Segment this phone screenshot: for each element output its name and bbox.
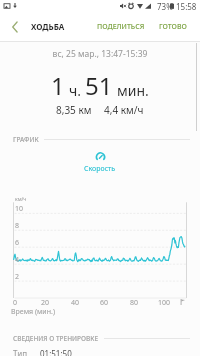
staticText: 100: [152, 298, 176, 308]
staticText: 01:51:50: [40, 348, 72, 356]
staticText: 4,4 км/ч: [104, 103, 144, 117]
staticText: ХОДЬБА: [31, 21, 65, 32]
staticText: 0: [3, 298, 27, 308]
staticText: 4: [15, 255, 20, 265]
staticText: Время (мин.): [11, 307, 55, 317]
staticText: км/ч: [15, 196, 27, 203]
staticText: 73%: [157, 1, 173, 12]
staticText: 8: [15, 221, 20, 231]
staticText: 15:58: [176, 1, 197, 12]
staticText: ПОДЕЛИТЬСЯ: [97, 22, 145, 32]
staticText: вс, 25 мар., 13:47-15:39: [0, 48, 200, 60]
staticText: 6: [15, 238, 20, 248]
staticText: Тип: [13, 348, 28, 356]
staticText: 1: [51, 69, 65, 102]
staticText: 8,35 км: [56, 103, 92, 117]
staticText: ГОТОВО: [159, 22, 187, 32]
staticText: мин.: [117, 81, 149, 100]
button[interactable]: Назад: [6, 12, 24, 42]
button[interactable]: ГОТОВО: [154, 12, 192, 42]
staticText: 60: [92, 298, 116, 308]
staticText: ч.: [69, 81, 81, 100]
staticText: 10: [15, 204, 24, 214]
staticText: 2: [15, 272, 20, 282]
staticText: 80: [122, 298, 146, 308]
staticText: ГРАФИК: [13, 135, 39, 144]
staticText: СВЕДЕНИЯ О ТРЕНИРОВКЕ: [13, 334, 99, 343]
staticText: 51: [85, 69, 113, 102]
staticText: Скорость: [84, 164, 116, 174]
staticText: 40: [63, 298, 87, 308]
staticText: 20: [33, 298, 57, 308]
button[interactable]: ПОДЕЛИТЬСЯ: [92, 12, 150, 42]
button[interactable]: Скорость: [0, 152, 200, 180]
